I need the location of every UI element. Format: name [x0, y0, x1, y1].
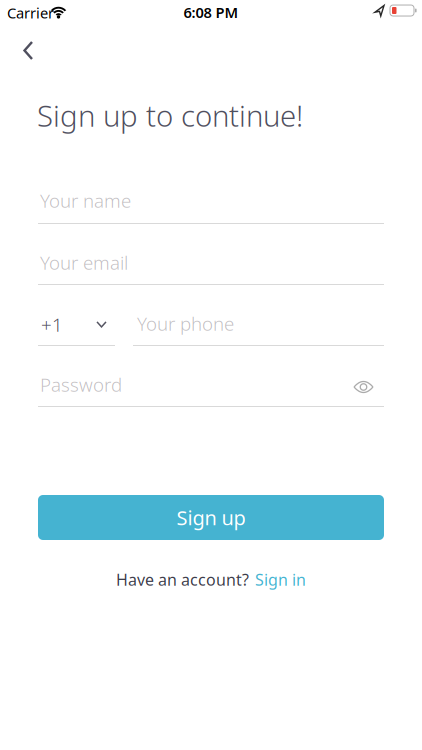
- staticText: Your email: [40, 250, 128, 275]
- staticText: 6:08 PM: [183, 2, 238, 22]
- button[interactable]: Show password: [346, 374, 381, 400]
- staticText: Carrier: [7, 3, 54, 22]
- button[interactable]: Sign in: [255, 569, 306, 590]
- staticText: Your phone: [137, 311, 234, 336]
- staticText: Sign in: [255, 569, 306, 590]
- staticText: Your name: [40, 188, 131, 213]
- button[interactable]: Sign up: [38, 495, 384, 540]
- button[interactable]: Back: [0, 29, 46, 72]
- staticText: Password: [40, 372, 122, 397]
- staticText: +1: [41, 312, 63, 337]
- button[interactable]: Country code: [41, 312, 106, 337]
- staticText: Sign up: [176, 504, 245, 531]
- staticText: Have an account?: [116, 569, 249, 590]
- staticText: Sign up to continue!: [37, 96, 303, 135]
